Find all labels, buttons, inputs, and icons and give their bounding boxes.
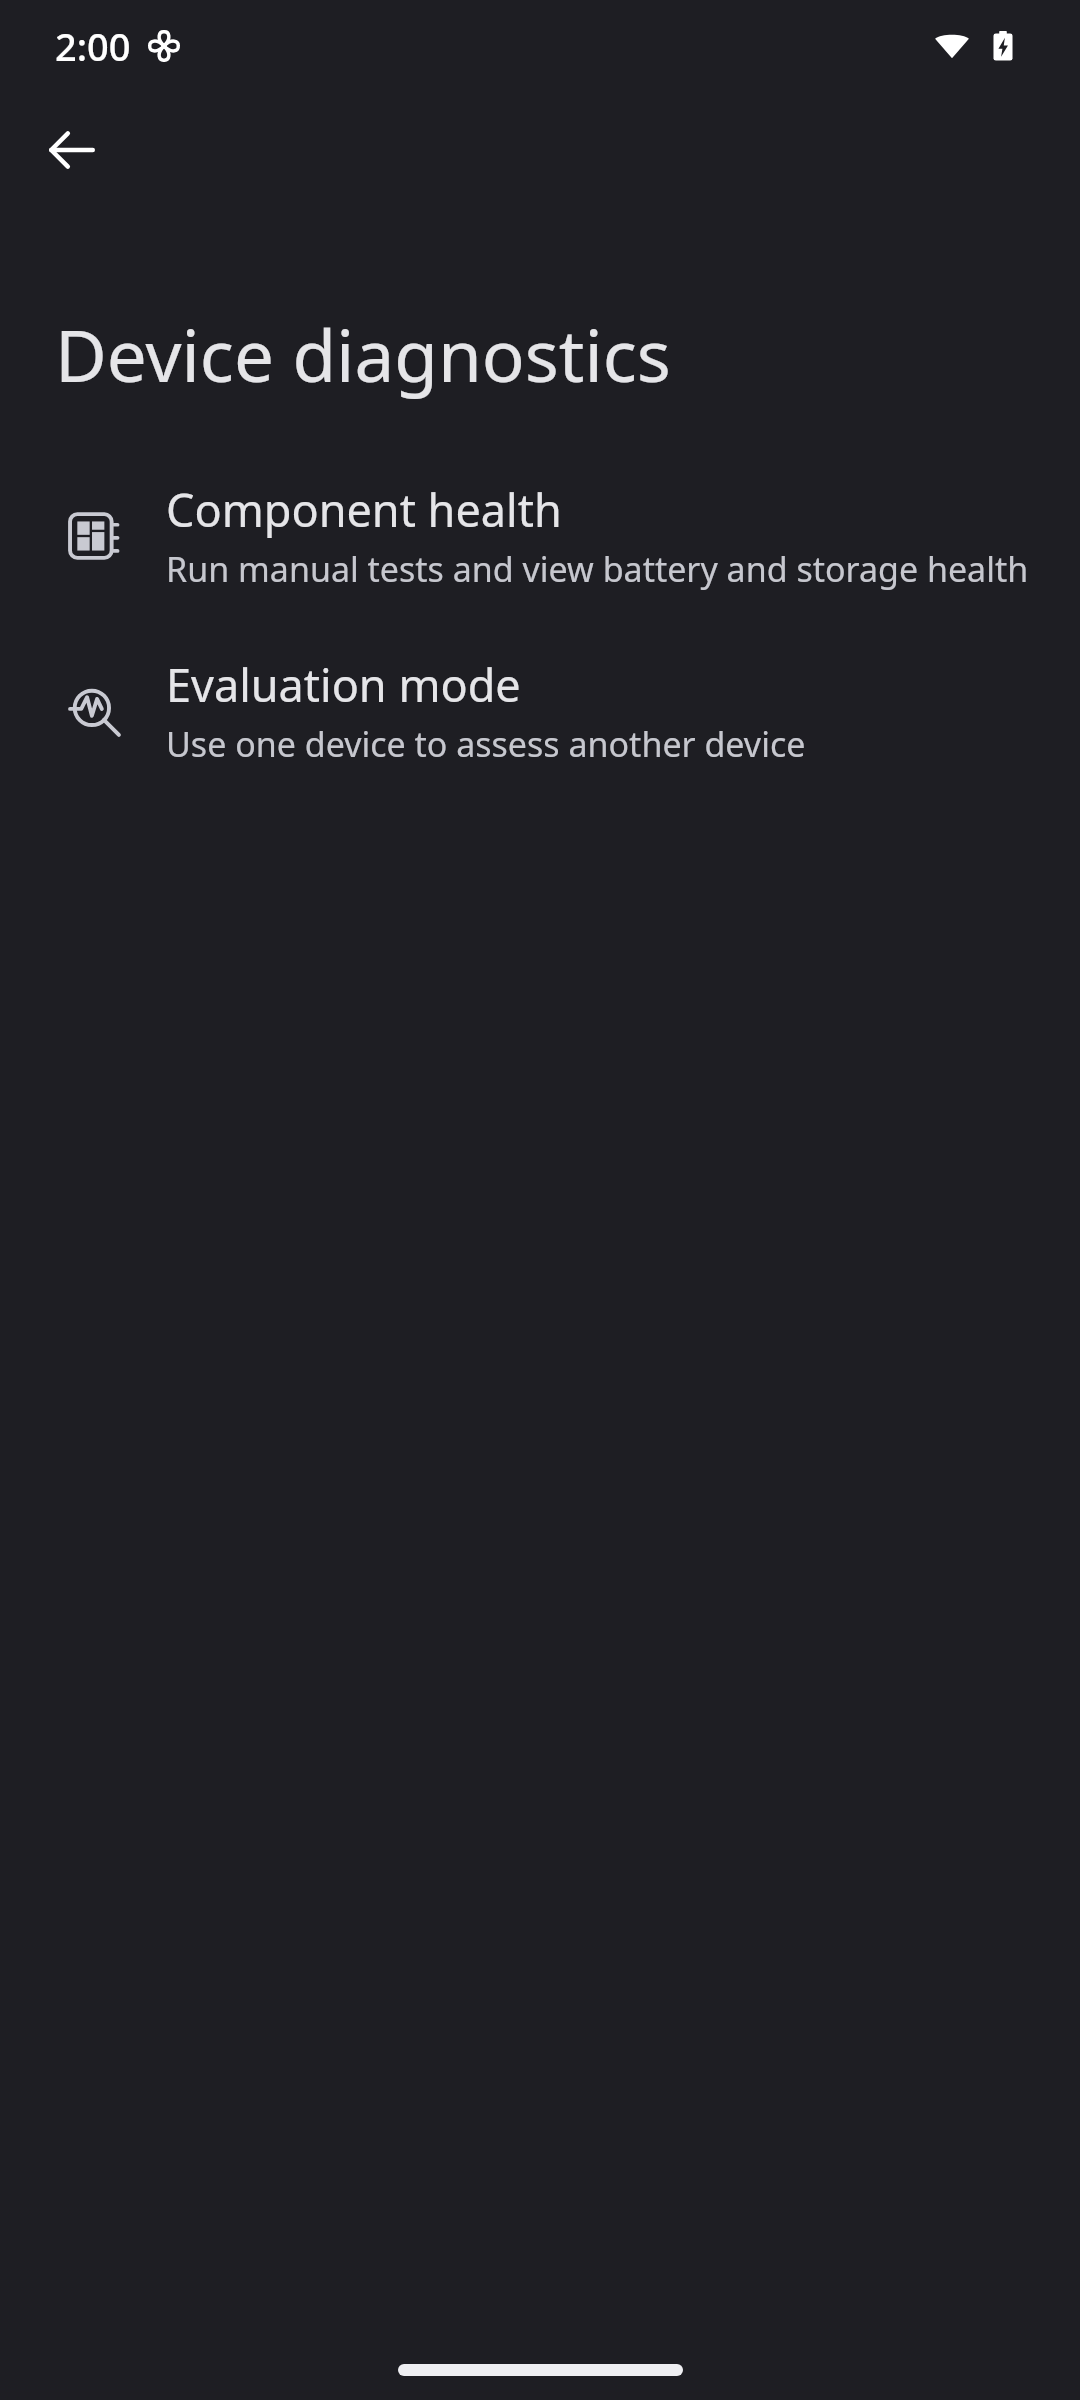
staticText: Device diagnostics [55, 306, 671, 403]
button[interactable]: Component health [0, 465, 1080, 606]
staticText: Component health [166, 479, 562, 540]
staticText: Use one device to assess another device [166, 721, 806, 767]
staticText: Evaluation mode [166, 654, 521, 715]
staticText: 2:00 [55, 20, 131, 72]
staticText: Run manual tests and view battery and st… [166, 546, 1029, 592]
button[interactable]: Back [24, 102, 120, 198]
button[interactable]: Evaluation mode [0, 640, 1080, 781]
